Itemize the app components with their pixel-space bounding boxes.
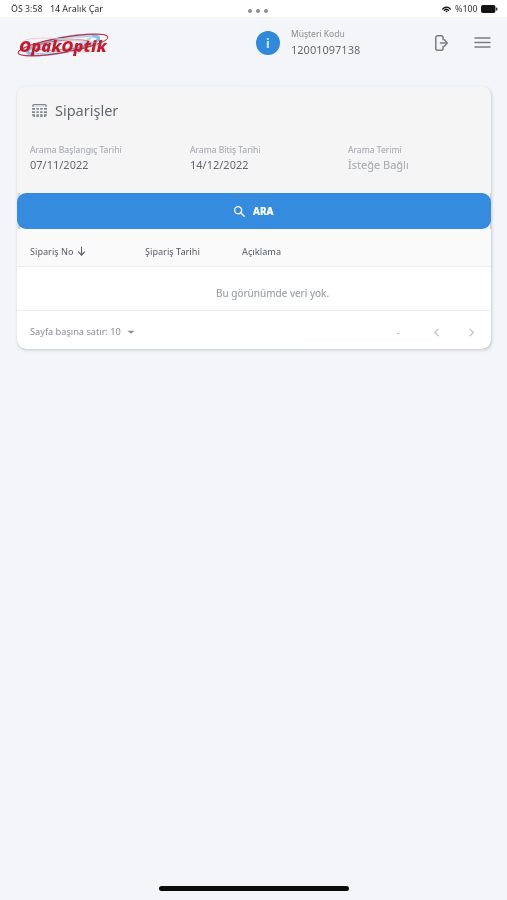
staticText: Açıklama	[242, 245, 282, 257]
button[interactable]: Arama Terimi	[348, 144, 478, 172]
button[interactable]: OpakOptik	[14, 31, 112, 63]
staticText: Şipariş Tarihi	[145, 245, 242, 257]
button[interactable]: Sipariş No	[30, 245, 145, 257]
staticText: 14/12/2022	[190, 157, 249, 172]
button[interactable]: i	[256, 28, 361, 57]
staticText: i	[266, 34, 270, 52]
button[interactable]: Menü	[468, 33, 496, 61]
staticText: Siparişler	[55, 100, 119, 120]
staticText: Sipariş No	[30, 245, 74, 257]
button[interactable]: Sonraki sayfa	[459, 320, 483, 344]
button[interactable]: Arama Bitiş Tarihi	[190, 144, 348, 172]
button[interactable]: Çıkış Yap	[427, 29, 455, 57]
staticText: Arama Başlangıç Tarihi	[30, 144, 122, 156]
staticText: 07/11/2022	[30, 157, 89, 172]
staticText: İsteğe Bağlı	[348, 157, 409, 172]
staticText: Sayfa başına satır: 10	[30, 325, 121, 338]
staticText: OpakOptik	[19, 34, 107, 56]
staticText: -	[396, 324, 400, 339]
staticText: 12001097138	[291, 42, 361, 57]
button[interactable]: Sayfa başına satır: 10	[30, 325, 135, 338]
button[interactable]: Arama Başlangıç Tarihi	[30, 144, 190, 172]
staticText: Bu görünümde veri yok.	[216, 286, 330, 300]
staticText: Müşteri Kodu	[291, 28, 345, 40]
staticText: ÖS 3:58	[11, 3, 43, 15]
button[interactable]: Önceki sayfa	[424, 320, 448, 344]
staticText: Arama Terimi	[348, 144, 402, 156]
staticText: ARA	[253, 204, 274, 218]
staticText: %100	[455, 3, 478, 15]
staticText: 14 Aralık Çar	[50, 3, 103, 15]
button[interactable]: ARA	[17, 193, 491, 229]
staticText: Arama Bitiş Tarihi	[190, 144, 261, 156]
